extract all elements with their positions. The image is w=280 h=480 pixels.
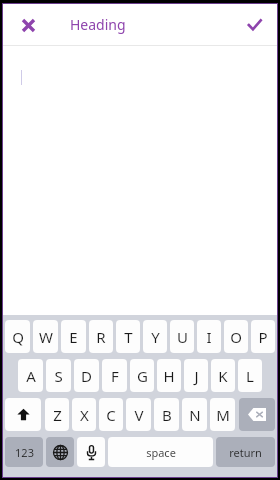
button[interactable]: Change keyboard language <box>46 437 74 467</box>
button[interactable]: D <box>74 359 99 392</box>
staticText: return <box>229 445 262 460</box>
button[interactable]: W <box>33 320 58 353</box>
staticText: 123 <box>15 445 34 460</box>
button[interactable]: O <box>224 320 248 353</box>
staticText: C <box>106 405 116 425</box>
staticText: X <box>80 405 89 425</box>
staticText: O <box>230 327 242 347</box>
button[interactable]: R <box>89 320 113 353</box>
button[interactable]: Close <box>13 10 43 40</box>
button[interactable]: A <box>18 359 43 392</box>
button[interactable]: Voice input <box>77 437 105 467</box>
staticText: Z <box>53 405 62 425</box>
button[interactable]: return <box>216 437 275 467</box>
button[interactable]: Y <box>143 320 167 353</box>
button[interactable]: P <box>251 320 275 353</box>
button[interactable]: space <box>108 437 213 467</box>
staticText: A <box>26 366 36 386</box>
button[interactable]: X <box>72 398 96 431</box>
button[interactable]: L <box>238 359 262 392</box>
button[interactable]: U <box>170 320 194 353</box>
staticText: Q <box>12 327 24 347</box>
button[interactable]: N <box>182 398 207 431</box>
button[interactable]: 123 <box>5 437 43 467</box>
staticText: E <box>69 327 78 347</box>
button[interactable]: Z <box>45 398 69 431</box>
staticText: D <box>81 366 92 386</box>
button[interactable]: E <box>61 320 86 353</box>
button[interactable]: V <box>126 398 151 431</box>
staticText: T <box>124 327 133 347</box>
button[interactable]: F <box>102 359 127 392</box>
button[interactable]: Confirm <box>239 10 269 40</box>
button[interactable]: M <box>210 398 235 431</box>
button[interactable]: T <box>116 320 140 353</box>
staticText: space <box>146 445 176 460</box>
staticText: I <box>206 327 212 347</box>
staticText: K <box>218 366 228 386</box>
staticText: N <box>189 405 201 425</box>
staticText: U <box>177 327 188 347</box>
staticText: V <box>134 405 144 425</box>
button[interactable]: Shift <box>5 398 41 431</box>
staticText: F <box>111 366 119 386</box>
staticText: S <box>54 366 63 386</box>
button[interactable]: J <box>184 359 208 392</box>
staticText: R <box>96 327 106 347</box>
staticText: M <box>216 405 230 425</box>
button[interactable]: K <box>211 359 235 392</box>
staticText: B <box>162 405 172 425</box>
button[interactable]: B <box>154 398 179 431</box>
button[interactable]: H <box>157 359 181 392</box>
staticText: Y <box>151 327 160 347</box>
button[interactable]: G <box>130 359 154 392</box>
staticText: W <box>39 327 53 347</box>
button[interactable]: Q <box>5 320 30 353</box>
staticText: P <box>258 327 268 347</box>
staticText: J <box>194 366 199 386</box>
button[interactable]: S <box>46 359 71 392</box>
staticText: H <box>163 366 175 386</box>
staticText: L <box>246 366 254 386</box>
button[interactable]: Backspace <box>239 398 275 431</box>
button[interactable]: C <box>99 398 123 431</box>
button[interactable]: I <box>197 320 221 353</box>
staticText: G <box>137 366 148 386</box>
staticText: Heading <box>70 15 126 34</box>
